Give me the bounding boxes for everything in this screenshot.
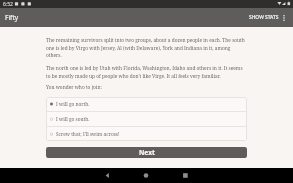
button[interactable]: I will go south. <box>46 112 247 126</box>
staticText: I will go north. <box>56 101 90 108</box>
button[interactable]: Next <box>46 147 247 158</box>
staticText: 6:52 <box>3 1 13 8</box>
button[interactable]: I will go north. <box>46 97 247 111</box>
staticText: Screw that; I'll swim across! <box>56 131 120 138</box>
button[interactable]: Screw that; I'll swim across! <box>46 127 247 141</box>
button[interactable]: SHOW STATS <box>247 10 279 25</box>
staticText: SHOW STATS <box>249 14 279 21</box>
staticText: Next <box>139 148 155 157</box>
staticText: I will go south. <box>56 116 90 123</box>
button[interactable]: More options <box>279 13 289 23</box>
staticText: Fifty <box>5 13 19 22</box>
staticText: You wonder who to join: <box>46 84 102 91</box>
staticText: The north one is led by Utah with Florid… <box>46 65 247 79</box>
staticText: The remaining survivors split into two g… <box>46 37 247 58</box>
